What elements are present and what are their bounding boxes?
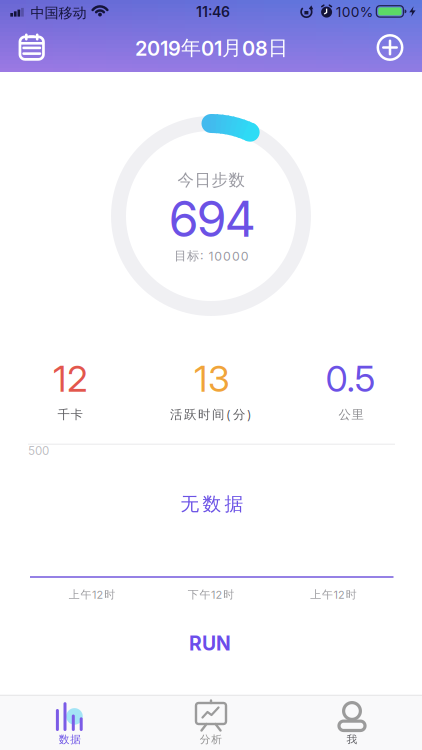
staticText: 今日步数	[177, 168, 244, 192]
staticText: 上午12时	[69, 586, 115, 603]
staticText: 数据	[59, 731, 81, 747]
button[interactable]: Add	[372, 29, 408, 65]
staticText: 下午12时	[188, 586, 234, 603]
staticText: 100%	[336, 2, 373, 22]
button[interactable]: 我	[302, 695, 402, 750]
staticText: 2019年01月08日	[135, 33, 288, 63]
staticText: 12	[53, 353, 88, 404]
staticText: 活跃时间(分)	[170, 405, 252, 424]
button[interactable]: Calendar	[0, 0, 422, 72]
staticText: 13	[194, 353, 230, 404]
staticText: 0.5	[325, 353, 375, 404]
staticText: 千卡	[57, 405, 82, 424]
staticText: RUN	[189, 630, 231, 657]
button[interactable]: RUN	[150, 621, 270, 665]
staticText: 中国移动	[31, 2, 87, 24]
staticText: 公里	[338, 405, 363, 424]
staticText: 分析	[200, 731, 222, 747]
button[interactable]: 数据	[20, 695, 120, 750]
staticText: 11:46	[196, 2, 230, 22]
staticText: 694	[168, 184, 255, 254]
button[interactable]: 分析	[161, 695, 261, 750]
staticText: 500	[28, 442, 49, 459]
staticText: 无数据	[180, 490, 243, 518]
staticText: 我	[346, 731, 357, 747]
staticText: 目标: 10000	[174, 247, 249, 265]
staticText: 上午12时	[310, 586, 357, 603]
